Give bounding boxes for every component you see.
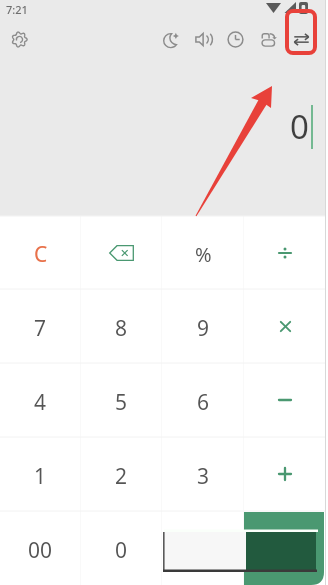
- staticText: %: [195, 241, 212, 268]
- button[interactable]: Settings: [3, 18, 35, 60]
- staticText: 7:21: [6, 2, 28, 17]
- button[interactable]: 8: [81, 289, 162, 363]
- staticText: 6: [197, 388, 210, 417]
- button[interactable]: 1: [0, 437, 81, 511]
- button[interactable]: [162, 511, 244, 585]
- button[interactable]: 9: [162, 289, 244, 363]
- button[interactable]: History: [219, 18, 251, 60]
- button[interactable]: Dark mode: [155, 18, 187, 60]
- button[interactable]: Copy: [252, 18, 284, 60]
- button[interactable]: [244, 511, 326, 585]
- button[interactable]: Swap: [285, 18, 317, 60]
- staticText: 8: [115, 314, 128, 343]
- staticText: 7: [34, 314, 47, 343]
- button[interactable]: 5: [81, 363, 162, 437]
- button[interactable]: Sound: [187, 18, 219, 60]
- button[interactable]: %: [162, 216, 244, 289]
- staticText: 3: [197, 462, 210, 491]
- button[interactable]: [244, 363, 326, 437]
- button[interactable]: 6: [162, 363, 244, 437]
- staticText: 2: [115, 462, 128, 491]
- button[interactable]: 7: [0, 289, 81, 363]
- button[interactable]: [244, 437, 326, 511]
- staticText: 0: [115, 536, 128, 565]
- staticText: 00: [28, 536, 53, 565]
- button[interactable]: [244, 216, 326, 289]
- staticText: 9: [197, 314, 210, 343]
- button[interactable]: 3: [162, 437, 244, 511]
- staticText: 1: [34, 462, 47, 491]
- staticText: 4: [34, 388, 47, 417]
- button[interactable]: [244, 289, 326, 363]
- button[interactable]: 4: [0, 363, 81, 437]
- button[interactable]: 0: [81, 511, 162, 585]
- button[interactable]: C: [0, 216, 81, 289]
- button[interactable]: 00: [0, 511, 81, 585]
- staticText: C: [34, 240, 48, 269]
- staticText: 5: [115, 388, 128, 417]
- button[interactable]: 2: [81, 437, 162, 511]
- button[interactable]: [81, 216, 162, 289]
- staticText: 0: [290, 104, 309, 149]
